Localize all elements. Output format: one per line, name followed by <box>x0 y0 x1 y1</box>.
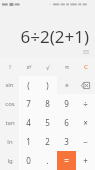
button[interactable]: 3 <box>57 132 76 151</box>
staticText: 4 <box>26 117 31 128</box>
staticText: … <box>49 2 52 6</box>
button[interactable]: ÷ <box>76 94 95 113</box>
button[interactable]: 2 <box>38 132 57 151</box>
button[interactable]: π <box>57 58 76 76</box>
button[interactable]: 7 <box>19 94 38 113</box>
staticText: 9 <box>64 98 69 109</box>
button[interactable]: + <box>76 151 95 170</box>
button[interactable]: 4 <box>19 113 38 132</box>
button[interactable]: lg <box>0 151 19 170</box>
staticText: 3 <box>64 136 69 147</box>
button[interactable]: tan <box>0 113 19 132</box>
staticText: 6÷2(2+1) <box>20 25 89 48</box>
staticText: π <box>65 63 69 71</box>
button[interactable]: − <box>76 132 95 151</box>
staticText: 2 <box>45 136 50 147</box>
button[interactable]: 9 <box>57 94 76 113</box>
button[interactable]: . <box>38 151 57 170</box>
button[interactable]: C <box>76 58 95 76</box>
button[interactable]: 6 <box>57 113 76 132</box>
staticText: 7 <box>26 98 31 109</box>
staticText: × <box>83 117 88 128</box>
staticText: ! <box>9 63 11 71</box>
staticText: − <box>83 136 88 147</box>
button[interactable]: Backspace <box>76 76 95 94</box>
staticText: 5 <box>45 117 50 128</box>
staticText: ( <box>27 80 30 91</box>
button[interactable]: sin <box>0 76 19 94</box>
staticText: + <box>83 155 88 166</box>
staticText: ÷ <box>83 98 88 109</box>
staticText: ) <box>46 80 49 91</box>
staticText: xʸ <box>26 63 32 71</box>
staticText: e <box>65 81 69 89</box>
button[interactable]: ln <box>0 132 19 151</box>
staticText: = <box>64 155 69 166</box>
staticText: √ <box>46 64 50 71</box>
staticText: 1 <box>26 136 31 147</box>
staticText: . <box>46 155 49 166</box>
button[interactable]: ) <box>38 76 57 94</box>
staticText: 6 <box>64 117 69 128</box>
button[interactable]: e <box>57 76 76 94</box>
button[interactable]: ! <box>0 58 19 76</box>
staticText: lg <box>7 157 13 165</box>
staticText: 0 <box>26 155 31 166</box>
button[interactable]: 1 <box>19 132 38 151</box>
button[interactable]: √ <box>38 58 57 76</box>
button[interactable]: 5 <box>38 113 57 132</box>
staticText: ln <box>7 138 13 146</box>
staticText: sin <box>5 81 14 89</box>
button[interactable]: xʸ <box>19 58 38 76</box>
staticText: tan <box>5 119 15 127</box>
button[interactable]: = <box>57 151 76 170</box>
staticText: 8 <box>45 98 50 109</box>
button[interactable]: × <box>76 113 95 132</box>
button[interactable]: ( <box>19 76 38 94</box>
button[interactable]: 0 <box>19 151 38 170</box>
staticText: C <box>84 63 88 71</box>
button[interactable]: 8 <box>38 94 57 113</box>
staticText: cos <box>5 100 15 108</box>
button[interactable]: cos <box>0 94 19 113</box>
